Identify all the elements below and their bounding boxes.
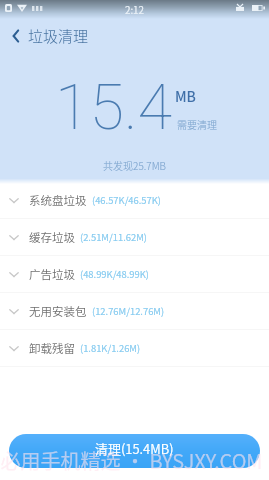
button[interactable]: 无用安装包 — [0, 293, 269, 330]
staticText: 清理(15.4MB) — [95, 439, 174, 458]
staticText: 需要清理 — [177, 117, 217, 131]
button[interactable]: 广告垃圾 — [0, 256, 269, 293]
staticText: (48.99K/48.99K) — [80, 267, 149, 281]
staticText: 缓存垃圾 — [29, 229, 75, 246]
button[interactable]: Back — [5, 25, 27, 47]
button[interactable]: 系统盘垃圾 — [0, 182, 269, 219]
staticText: 15.4 — [55, 71, 172, 145]
staticText: 系统盘垃圾 — [29, 192, 87, 209]
staticText: 必用手机精选 · BYSJXY.COM — [0, 446, 266, 475]
button[interactable]: 卸载残留 — [0, 330, 269, 367]
staticText: MB — [175, 86, 196, 106]
staticText: 无用安装包 — [29, 303, 87, 320]
staticText: 2:12 — [0, 2, 269, 16]
staticText: (46.57K/46.57K) — [92, 193, 161, 207]
staticText: (12.76M/12.76M) — [92, 304, 165, 318]
staticText: 共发现25.7MB — [0, 158, 269, 172]
staticText: 广告垃圾 — [29, 266, 75, 283]
button[interactable]: 清理(15.4MB) — [9, 434, 260, 468]
staticText: (2.51M/11.62M) — [80, 230, 147, 244]
staticText: (1.81K/1.26M) — [80, 341, 141, 355]
staticText: 卸载残留 — [29, 340, 75, 357]
button[interactable]: 缓存垃圾 — [0, 219, 269, 256]
staticText: 垃圾清理 — [28, 25, 89, 47]
